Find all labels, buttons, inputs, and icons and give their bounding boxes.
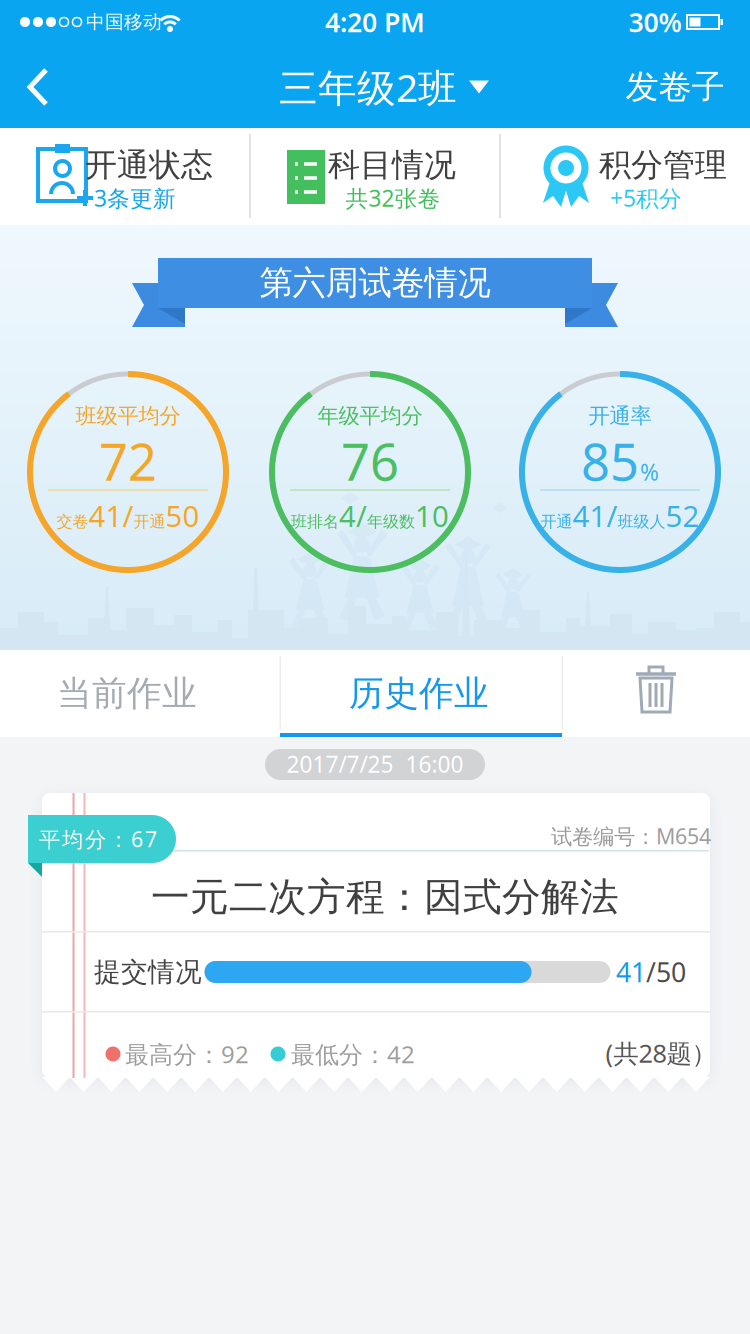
staticText: 开通率 bbox=[588, 403, 651, 429]
staticText: 30% bbox=[628, 4, 681, 40]
staticText: 共32张卷 bbox=[345, 183, 440, 213]
staticText: 开通 bbox=[540, 512, 572, 531]
staticText: / bbox=[606, 496, 617, 535]
staticText: 班排名 bbox=[291, 512, 339, 531]
staticText: 开通 bbox=[133, 512, 165, 531]
button[interactable]: 三年级2班 bbox=[279, 61, 489, 113]
staticText: 41 bbox=[616, 954, 646, 990]
staticText: 3条更新 bbox=[94, 183, 176, 213]
staticText: 班级平均分 bbox=[75, 403, 180, 429]
staticText: 4 bbox=[339, 496, 356, 535]
staticText: 积分管理 bbox=[599, 145, 727, 185]
staticText: 交卷 bbox=[56, 512, 88, 531]
button[interactable]: 开通状态 bbox=[0, 128, 250, 225]
staticText: 发卷子 bbox=[625, 66, 724, 107]
staticText: 三年级2班 bbox=[279, 61, 457, 113]
staticText: 最高分：92 bbox=[125, 1038, 249, 1070]
staticText: 历史作业 bbox=[349, 672, 489, 715]
button[interactable]: 科目情况 bbox=[250, 128, 500, 225]
button[interactable]: 历史作业 bbox=[278, 650, 560, 737]
button[interactable]: Back bbox=[18, 57, 58, 117]
staticText: 年级数 bbox=[367, 512, 415, 531]
button[interactable]: 发卷子 bbox=[625, 66, 724, 107]
staticText: 2017/7/25 16:00 bbox=[286, 749, 463, 779]
staticText: / bbox=[356, 496, 367, 535]
staticText: +5积分 bbox=[610, 183, 682, 213]
staticText: 52 bbox=[665, 496, 699, 535]
staticText: 科目情况 bbox=[328, 145, 456, 185]
staticText: 平均分：67 bbox=[39, 825, 157, 853]
staticText: 41 bbox=[88, 496, 122, 535]
button[interactable]: Delete bbox=[616, 650, 696, 737]
staticText: 4:20 PM bbox=[325, 4, 425, 40]
staticText: / bbox=[122, 496, 133, 535]
staticText: 72 bbox=[99, 427, 157, 495]
staticText: /50 bbox=[646, 954, 686, 990]
button[interactable]: 积分管理 bbox=[500, 128, 750, 225]
staticText: 班级人 bbox=[617, 512, 665, 531]
staticText: 年级平均分 bbox=[317, 403, 422, 429]
staticText: 试卷编号：M654 bbox=[551, 822, 711, 850]
staticText: 10 bbox=[415, 496, 449, 535]
staticText: 最低分：42 bbox=[291, 1038, 415, 1070]
staticText: 中国移动 bbox=[86, 10, 162, 33]
staticText: 85 bbox=[581, 427, 639, 495]
staticText: 76 bbox=[341, 427, 399, 495]
staticText: (共28题） bbox=[605, 1036, 716, 1070]
staticText: 当前作业 bbox=[57, 672, 197, 715]
staticText: 41 bbox=[572, 496, 606, 535]
button[interactable]: 当前作业 bbox=[0, 650, 267, 737]
staticText: % bbox=[640, 457, 659, 487]
staticText: 开通状态 bbox=[85, 145, 213, 185]
staticText: 提交情况 bbox=[94, 956, 202, 988]
staticText: 50 bbox=[165, 496, 199, 535]
staticText: 一元二次方程：因式分解法 bbox=[151, 873, 619, 921]
staticText: 第六周试卷情况 bbox=[259, 262, 490, 303]
